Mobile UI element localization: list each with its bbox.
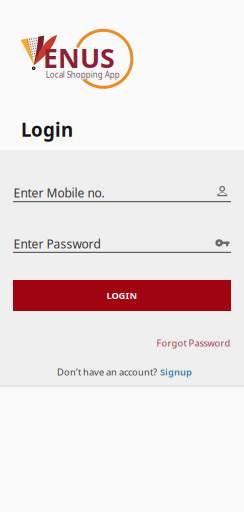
staticText: Enter Password	[14, 236, 101, 252]
staticText: Enter Mobile no.	[14, 185, 105, 201]
staticText: LOGIN	[106, 289, 137, 302]
button[interactable]: Forgot Password	[157, 337, 232, 349]
staticText: Local Shopping App	[46, 69, 120, 80]
staticText: ENUS	[43, 40, 115, 75]
staticText: Signup	[160, 366, 192, 378]
staticText: Don’t have an account?	[57, 366, 157, 378]
staticText: Forgot Password	[157, 337, 231, 349]
staticText: Login	[21, 117, 73, 142]
button[interactable]: Don’t have an account?	[2, 366, 244, 378]
button[interactable]: LOGIN	[13, 280, 231, 311]
